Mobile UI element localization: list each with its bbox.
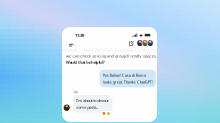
staticText: relaxed — and if you'd like, I can look … (62, 47, 161, 52)
staticText: we can check pricing and group-friendly … (66, 53, 157, 58)
staticText: some pasta... (76, 104, 99, 110)
button[interactable]: Participants (136, 39, 154, 47)
staticText: David (73, 90, 79, 94)
staticText: I'm about to devour (76, 98, 109, 103)
button[interactable]: New chat (128, 40, 135, 47)
button[interactable]: Menu (67, 42, 75, 48)
staticText: Would that be helpful? (66, 59, 105, 65)
staticText: looks great. Thanks ChatGPT! (103, 79, 153, 85)
staticText: 11:30 (75, 33, 84, 38)
staticText: Yes Italian! Casa di Roma (103, 72, 146, 78)
